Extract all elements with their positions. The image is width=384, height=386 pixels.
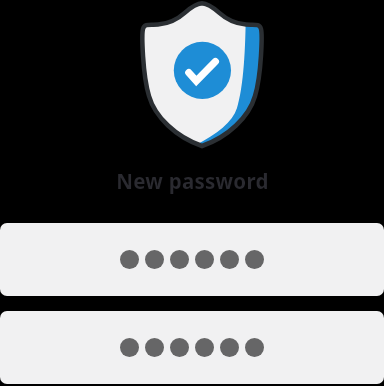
other: Security shield: [134, 0, 268, 148]
button[interactable]: Password entry: [0, 223, 384, 296]
button[interactable]: Password entry: [0, 311, 384, 384]
staticText: New password: [116, 167, 269, 195]
